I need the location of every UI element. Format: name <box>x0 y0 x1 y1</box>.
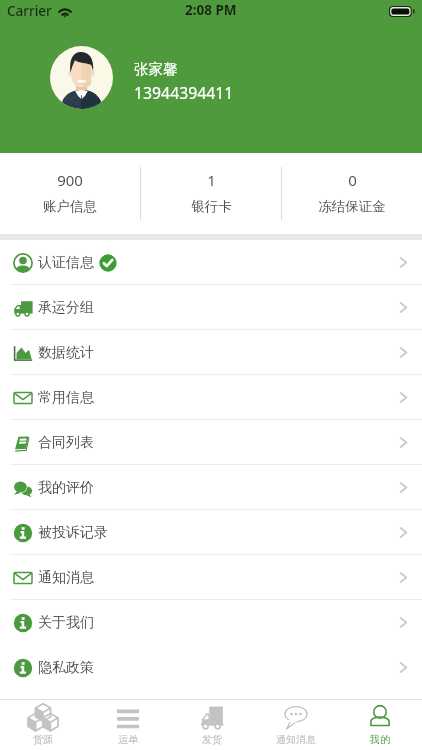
staticText: 数据统计 <box>38 344 94 362</box>
button[interactable]: 数据统计 <box>0 330 422 375</box>
staticText: 承运分组 <box>38 299 94 317</box>
staticText: 我的评价 <box>38 479 94 497</box>
staticText: Carrier <box>7 2 52 20</box>
staticText: 发货 <box>202 733 222 746</box>
button[interactable]: 通知消息 <box>0 555 422 600</box>
staticText: 关于我们 <box>38 614 94 632</box>
staticText: 我的 <box>370 733 390 746</box>
staticText: 冻结保证金 <box>318 198 386 215</box>
staticText: 运单 <box>118 733 138 746</box>
staticText: 13944394411 <box>134 82 234 104</box>
button[interactable]: 发货 <box>170 700 254 750</box>
staticText: 2:08 PM <box>185 1 237 19</box>
button[interactable]: 运单 <box>85 700 170 750</box>
button[interactable]: 900 <box>0 152 140 233</box>
staticText: 银行卡 <box>191 198 232 215</box>
staticText: 1 <box>207 170 216 190</box>
staticText: 隐私政策 <box>38 659 94 677</box>
button[interactable]: 我的评价 <box>0 465 422 510</box>
staticText: 常用信息 <box>38 389 94 407</box>
button[interactable]: 关于我们 <box>0 600 422 645</box>
staticText: 货源 <box>33 733 53 746</box>
staticText: 认证信息 <box>38 254 94 272</box>
staticText: 账户信息 <box>43 198 97 215</box>
button[interactable]: 0 <box>282 152 422 233</box>
button[interactable]: 合同列表 <box>0 420 422 465</box>
button[interactable]: 我的 <box>338 700 422 750</box>
staticText: 通知消息 <box>38 569 94 587</box>
staticText: 合同列表 <box>38 434 94 452</box>
staticText: 通知消息 <box>276 733 316 746</box>
staticText: 被投诉记录 <box>38 524 108 542</box>
button[interactable]: 货源 <box>0 700 85 750</box>
staticText: 900 <box>57 170 83 190</box>
button[interactable]: 承运分组 <box>0 285 422 330</box>
button[interactable]: 常用信息 <box>0 375 422 420</box>
staticText: 0 <box>348 170 357 190</box>
button[interactable]: 被投诉记录 <box>0 510 422 555</box>
staticText: 张家馨 <box>134 60 178 78</box>
button[interactable]: 通知消息 <box>254 700 338 750</box>
button[interactable]: 认证信息 <box>0 240 422 285</box>
button[interactable]: 隐私政策 <box>0 645 422 690</box>
button[interactable]: 1 <box>141 152 281 233</box>
